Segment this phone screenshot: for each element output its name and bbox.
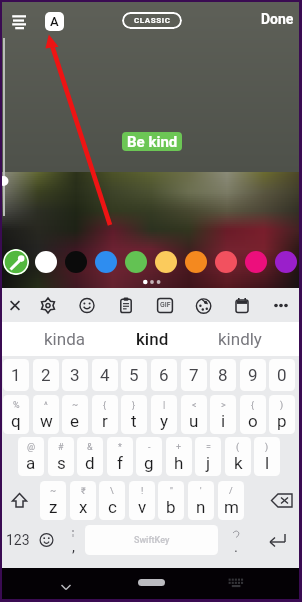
- button[interactable]: 4: [92, 359, 118, 391]
- button[interactable]: +: [166, 437, 192, 476]
- button[interactable]: Eyedropper: [3, 249, 29, 275]
- staticText: a: [26, 453, 36, 473]
- staticText: o: [248, 411, 258, 431]
- button[interactable]: 123: [3, 523, 33, 556]
- button[interactable]: -: [136, 437, 162, 476]
- staticText: b: [166, 497, 176, 517]
- button[interactable]: ': [188, 481, 214, 520]
- button[interactable]: Be kind: [122, 132, 182, 151]
- button[interactable]: ~: [62, 395, 88, 434]
- button[interactable]: kindly: [200, 322, 280, 356]
- button[interactable]: kind: [112, 322, 192, 356]
- button[interactable]: Colour swatch: [95, 251, 117, 273]
- staticText: ₹: [81, 486, 86, 497]
- button[interactable]: More: [265, 289, 297, 321]
- staticText: 6: [159, 365, 169, 385]
- button[interactable]: 5: [121, 359, 147, 391]
- button[interactable]: ): [254, 437, 280, 476]
- button[interactable]: }: [121, 395, 147, 434]
- staticText: d: [85, 453, 95, 473]
- staticText: k: [234, 453, 243, 473]
- staticText: 9: [248, 365, 258, 385]
- button[interactable]: \: [99, 481, 125, 520]
- staticText: h: [174, 453, 184, 473]
- button[interactable]: ": [158, 481, 184, 520]
- button[interactable]: Colour swatch: [215, 251, 237, 273]
- staticText: Done: [261, 11, 294, 27]
- button[interactable]: kinda: [24, 322, 104, 356]
- button[interactable]: 1: [3, 359, 29, 391]
- staticText: !: [141, 486, 144, 497]
- button[interactable]: CLASSIC: [122, 12, 182, 29]
- button[interactable]: {: [92, 395, 118, 434]
- button[interactable]: Shift: [3, 481, 36, 520]
- button[interactable]: .: [223, 523, 249, 556]
- button[interactable]: Settings: [32, 289, 64, 321]
- button[interactable]: Text alignment: [5, 6, 33, 34]
- staticText: {: [103, 400, 107, 411]
- button[interactable]: |: [151, 395, 177, 434]
- button[interactable]: ): [269, 395, 295, 434]
- button[interactable]: Colour swatch: [245, 251, 267, 273]
- staticText: GIF: [160, 301, 171, 309]
- button[interactable]: Close: [0, 289, 31, 321]
- button[interactable]: *: [107, 437, 133, 476]
- button[interactable]: Backspace: [265, 481, 299, 520]
- button[interactable]: Colour swatch: [185, 251, 207, 273]
- button[interactable]: GIF: [149, 289, 181, 321]
- button[interactable]: #: [48, 437, 74, 476]
- button[interactable]: =: [195, 437, 221, 476]
- staticText: @: [27, 442, 36, 453]
- button[interactable]: Colour swatch: [275, 251, 297, 273]
- button[interactable]: ^: [33, 395, 59, 434]
- button[interactable]: &: [77, 437, 103, 476]
- staticText: |: [163, 400, 166, 411]
- button[interactable]: >: [210, 395, 236, 434]
- staticText: 7: [189, 365, 199, 385]
- button[interactable]: Home: [138, 579, 165, 586]
- button[interactable]: 6: [151, 359, 177, 391]
- button[interactable]: Clipboard: [110, 289, 142, 321]
- button[interactable]: Colour swatch: [125, 251, 147, 273]
- button[interactable]: {: [240, 395, 266, 434]
- button[interactable]: ,: [62, 523, 84, 556]
- button[interactable]: Enter: [262, 523, 298, 556]
- button[interactable]: Stickers: [188, 289, 220, 321]
- button[interactable]: ~: [40, 481, 66, 520]
- staticText: j: [206, 453, 211, 473]
- button[interactable]: (: [225, 437, 251, 476]
- button[interactable]: 2: [33, 359, 59, 391]
- button[interactable]: Calendar: [226, 289, 258, 321]
- button[interactable]: 7: [181, 359, 207, 391]
- button[interactable]: @: [18, 437, 44, 476]
- button[interactable]: Space: [85, 525, 218, 555]
- button[interactable]: A: [45, 12, 64, 31]
- button[interactable]: Emoji: [71, 289, 103, 321]
- button[interactable]: 3: [62, 359, 88, 391]
- button[interactable]: Colour swatch: [35, 251, 57, 273]
- button[interactable]: 0: [269, 359, 295, 391]
- staticText: -: [148, 442, 151, 453]
- staticText: &: [87, 442, 93, 453]
- staticText: x: [79, 497, 88, 517]
- staticText: ~: [50, 486, 57, 497]
- button[interactable]: %: [3, 395, 29, 434]
- staticText: 5: [129, 365, 139, 385]
- button[interactable]: !: [129, 481, 155, 520]
- staticText: l: [265, 453, 270, 473]
- button[interactable]: Colour swatch: [155, 251, 177, 273]
- button[interactable]: <: [181, 395, 207, 434]
- button[interactable]: /: [218, 481, 244, 520]
- button[interactable]: Colour swatch: [65, 251, 87, 273]
- staticText: SwiftKey: [134, 535, 170, 546]
- button[interactable]: 9: [240, 359, 266, 391]
- button[interactable]: Emoji: [33, 523, 60, 556]
- staticText: f: [117, 453, 123, 473]
- staticText: >: [221, 400, 226, 411]
- button[interactable]: Hide keyboard: [52, 574, 80, 602]
- button[interactable]: ₹: [70, 481, 96, 520]
- button[interactable]: Done: [256, 8, 298, 30]
- button[interactable]: Switch keyboard: [228, 576, 244, 590]
- staticText: #: [58, 442, 64, 453]
- button[interactable]: 8: [210, 359, 236, 391]
